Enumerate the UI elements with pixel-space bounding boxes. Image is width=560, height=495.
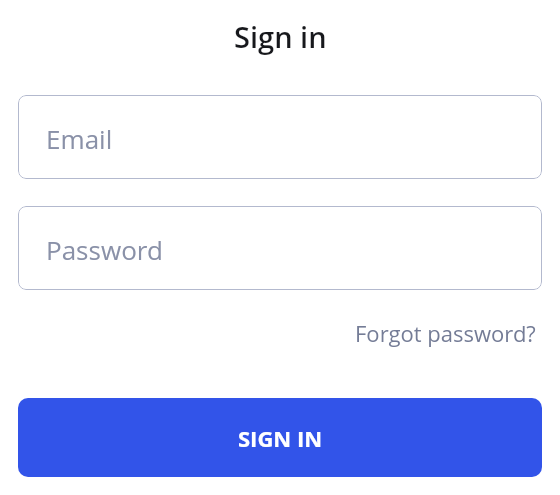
staticText: SIGN IN bbox=[238, 423, 323, 453]
staticText: Email bbox=[46, 121, 113, 156]
button[interactable]: Forgot password? bbox=[355, 318, 536, 348]
staticText: Sign in bbox=[234, 17, 327, 56]
button[interactable]: SIGN IN bbox=[18, 398, 542, 477]
staticText: Password bbox=[46, 232, 163, 267]
button[interactable]: Password bbox=[18, 206, 542, 290]
button[interactable]: Email bbox=[18, 95, 542, 179]
